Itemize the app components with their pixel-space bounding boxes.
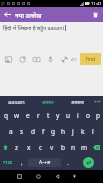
staticText: आसाना [71,99,84,105]
button[interactable]: Recents [15,172,24,181]
button[interactable]: आसान [32,96,64,107]
button[interactable]: u [63,107,73,123]
button[interactable]: Delete [87,7,103,22]
staticText: r [37,111,40,120]
staticText: ?123 [3,160,13,166]
staticText: h [61,127,66,136]
button[interactable]: a [5,123,16,139]
button[interactable]: Back [0,7,15,22]
staticText: w [14,111,20,120]
staticText: q [4,111,8,120]
staticText: p [96,111,100,120]
staticText: t [47,111,50,120]
staticText: . [67,159,69,167]
button[interactable]: r [33,107,43,123]
button[interactable]: Home [34,172,43,181]
staticText: e [26,111,30,120]
staticText: v [50,143,54,152]
staticText: find [86,56,96,63]
staticText: y [56,111,60,120]
button[interactable]: q [0,107,11,123]
button[interactable]: Attach [57,52,71,66]
staticText: 11:41 [91,1,102,7]
button[interactable]: , [15,155,28,170]
button[interactable]: Voice [43,52,57,66]
staticText: c [39,143,43,152]
button[interactable]: find [80,53,101,65]
button[interactable]: v [46,139,57,155]
button[interactable]: k [78,123,88,139]
button[interactable]: m [79,139,90,155]
staticText: l [92,127,94,136]
staticText: g [51,127,55,136]
staticText: j [72,127,74,136]
staticText: a [9,127,13,136]
button[interactable]: Backspace [90,139,103,155]
button[interactable]: b [57,139,68,155]
button[interactable]: Back [53,172,62,181]
staticText: आसान [42,99,54,105]
button[interactable]: Shift [0,139,11,155]
button[interactable]: i [73,107,83,123]
button[interactable]: c [35,139,46,155]
button[interactable]: Draw [15,52,29,66]
button[interactable]: z [11,139,23,155]
button[interactable]: n [68,139,79,155]
staticText: A→अ [39,159,51,166]
staticText: , [21,159,23,167]
staticText: d [31,127,35,136]
button[interactable]: s [16,123,27,139]
staticText: aasan [8,98,25,106]
button[interactable]: aasan [0,96,32,107]
button[interactable]: l [88,123,98,139]
button[interactable]: g [48,123,58,139]
button[interactable]: A→अ [28,158,61,167]
button[interactable]: Hide keyboard [70,172,79,181]
staticText: नया उल्लेख [15,11,42,19]
button[interactable]: f [38,123,48,139]
staticText: k [81,127,85,136]
staticText: 471 [71,57,78,62]
button[interactable]: . [61,155,74,170]
staticText: o [86,111,90,120]
staticText: x [27,143,31,152]
staticText: u [66,111,71,120]
staticText: z [15,143,19,152]
button[interactable]: t [43,107,53,123]
staticText: हिंदी में लिखना है बहुत aasani [3,24,64,31]
button[interactable]: h [58,123,68,139]
button[interactable]: p [93,107,103,123]
button[interactable]: x [23,139,35,155]
button[interactable]: y [53,107,63,123]
button[interactable]: Enter [74,155,103,170]
staticText: n [71,143,76,152]
staticText: b [61,143,65,152]
button[interactable]: j [68,123,78,139]
button[interactable]: Camera [29,52,43,66]
button[interactable]: ?123 [0,155,15,170]
button[interactable]: d [27,123,38,139]
button[interactable]: w [11,107,22,123]
button[interactable]: e [22,107,33,123]
button[interactable]: आसाना [64,96,91,107]
staticText: i [77,111,79,120]
staticText: m [81,143,88,152]
button[interactable]: o [83,107,93,123]
button[interactable]: More suggestions [91,96,103,107]
staticText: f [42,127,45,136]
button[interactable]: Add image [1,52,15,66]
staticText: s [20,127,24,136]
